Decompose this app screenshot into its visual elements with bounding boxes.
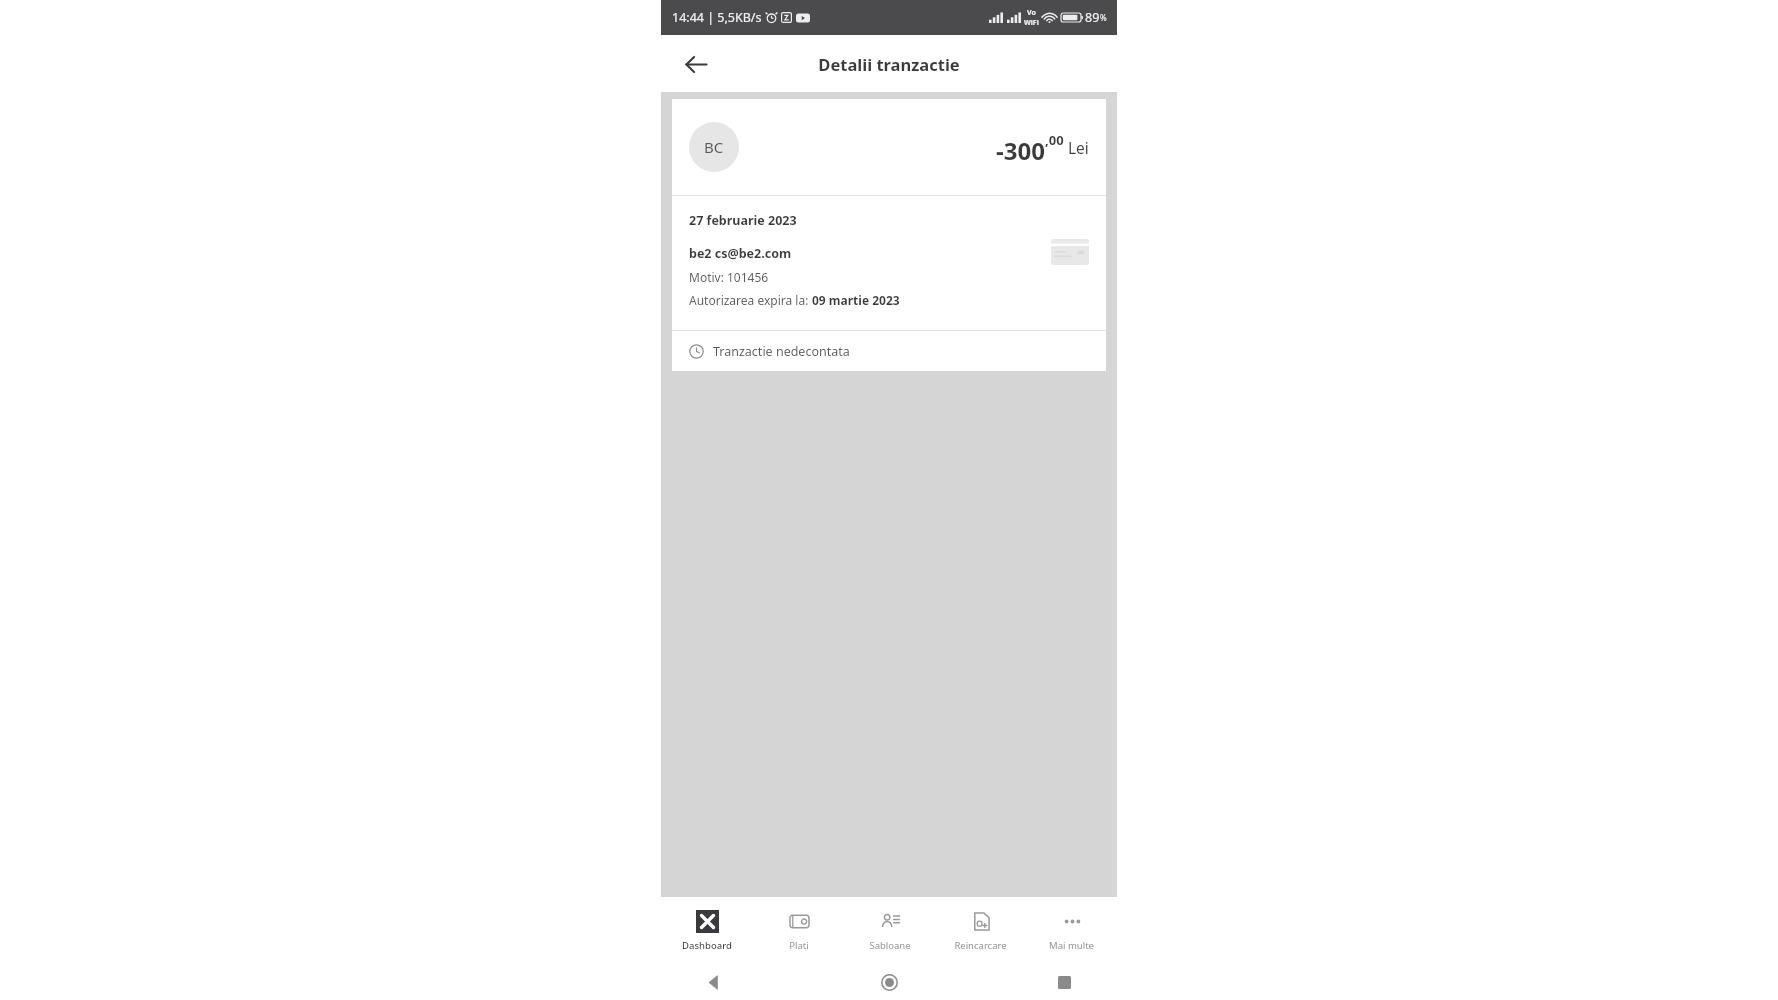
staticText: Detalii tranzactie — [818, 53, 960, 75]
button[interactable]: Recent apps — [1047, 965, 1081, 999]
staticText: ,00 — [1045, 131, 1064, 149]
staticText: Lei — [1068, 137, 1089, 158]
staticText: Vo — [1027, 8, 1036, 18]
staticText: Plati — [789, 939, 809, 952]
button[interactable]: Dashboard — [661, 897, 753, 963]
staticText: Dashboard — [682, 939, 732, 952]
button[interactable]: Back — [678, 46, 714, 82]
staticText: 14:44 | 5,5KB/s — [672, 9, 762, 26]
staticText: Motiv: 101456 — [689, 269, 769, 285]
staticText: -300 — [996, 134, 1045, 167]
staticText: % — [1100, 12, 1107, 23]
staticText: Autorizarea expira la: — [689, 292, 812, 308]
staticText: 27 februarie 2023 — [689, 212, 797, 229]
staticText: be2 cs@be2.com — [689, 245, 792, 262]
staticText: 89 — [1085, 9, 1100, 26]
button[interactable]: Sabloane — [844, 897, 935, 963]
staticText: WiFi — [1024, 18, 1039, 28]
button[interactable]: Plati — [753, 897, 844, 963]
staticText: BC — [704, 137, 724, 157]
staticText: Mai multe — [1049, 939, 1094, 952]
staticText: Reincarcare — [954, 939, 1007, 952]
button[interactable]: Reincarcare — [935, 897, 1026, 963]
button[interactable]: Back — [697, 965, 731, 999]
button[interactable]: Mai multe — [1026, 897, 1117, 963]
staticText: Tranzactie nedecontata — [713, 343, 850, 360]
staticText: 09 martie 2023 — [812, 292, 900, 308]
button[interactable]: Home — [872, 965, 906, 999]
staticText: Sabloane — [869, 939, 911, 952]
